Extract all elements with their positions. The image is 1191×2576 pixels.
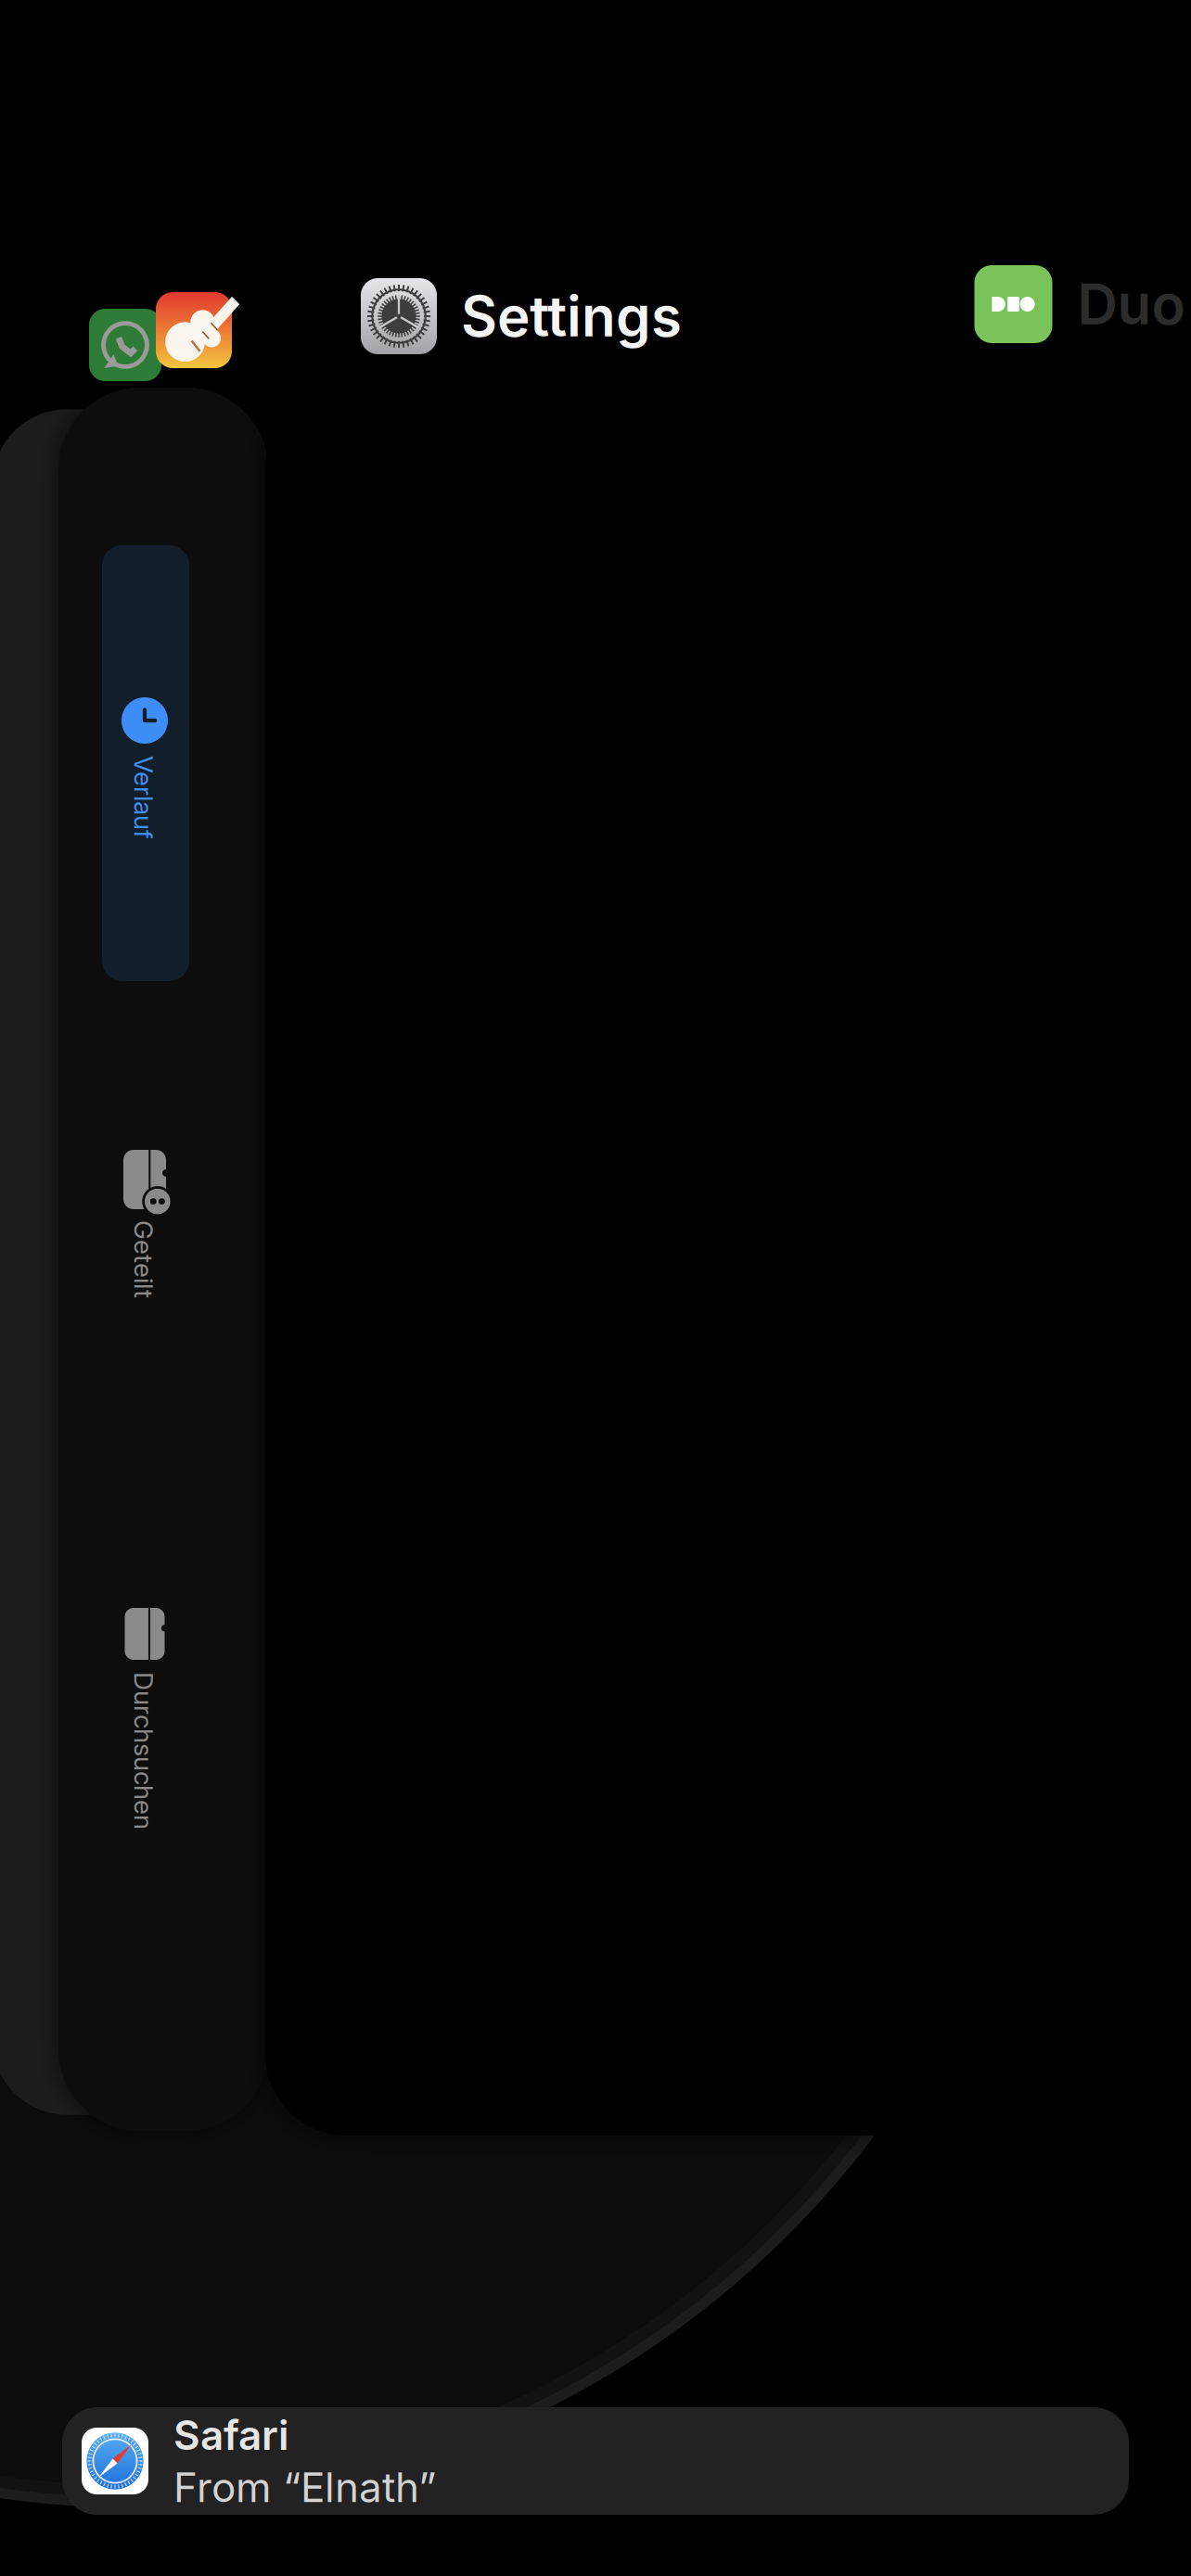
staticText: Geteilt — [105, 1244, 183, 1275]
staticText: From “Elnath” — [173, 2462, 436, 2512]
button[interactable]: Verlauf — [102, 545, 189, 981]
staticText: Settings — [461, 283, 682, 350]
staticText: Verlauf — [102, 782, 186, 813]
button[interactable]: WhatsApp — [89, 309, 161, 381]
button[interactable]: Durchsuchen — [102, 1592, 189, 1861]
staticText: Duo Mobile — [1077, 270, 1191, 338]
button[interactable]: GarageBand — [156, 292, 232, 368]
button[interactable]: Duo Mobile — [974, 265, 1191, 343]
staticText: Safari — [173, 2410, 289, 2460]
button[interactable]: Geteilt — [102, 1131, 189, 1354]
staticText: Durchsuchen — [65, 1735, 223, 1766]
button[interactable]: Settings — [361, 278, 682, 354]
button[interactable]: Safari — [62, 2407, 1129, 2515]
